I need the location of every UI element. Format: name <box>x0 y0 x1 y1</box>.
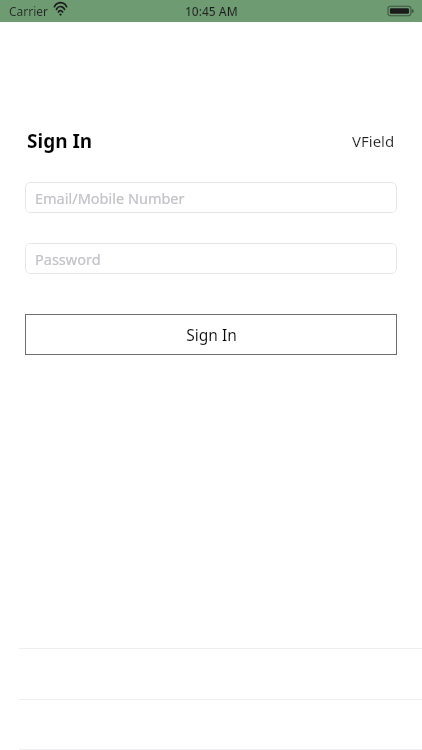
staticText: Email/Mobile Number <box>35 188 185 208</box>
button[interactable]: Email/Mobile Number <box>25 182 397 213</box>
staticText: Sign In <box>186 324 237 345</box>
staticText: Sign In <box>27 128 93 154</box>
staticText: 10:45 AM <box>185 3 238 19</box>
staticText: Password <box>35 249 101 269</box>
button[interactable]: VField <box>352 131 395 151</box>
button[interactable]: Password <box>25 243 397 274</box>
button[interactable]: Sign In <box>25 314 397 355</box>
staticText: Carrier <box>9 3 49 19</box>
